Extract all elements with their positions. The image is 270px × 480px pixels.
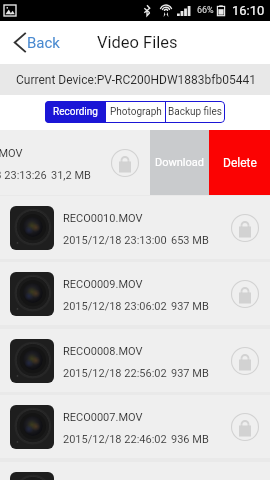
staticText: Video Files [97, 33, 178, 52]
staticText: RECO0011.MOV [0, 147, 23, 160]
staticText: RECO0008.MOV [63, 345, 143, 358]
button[interactable]: Lock file [110, 148, 140, 178]
staticText: 937 MB [171, 367, 209, 380]
staticText: Delete [223, 156, 257, 170]
staticText: RECO0010.MOV [63, 212, 143, 225]
staticText: 2015/12/18 22:46:02 [63, 433, 167, 446]
staticText: Current Device:PV-RC200HDW1883bfb05441 [16, 73, 256, 87]
button[interactable]: RECO0008.MOV [0, 329, 270, 392]
staticText: Photograph [110, 106, 162, 118]
staticText: 2015/12/18 23:13:26 [0, 169, 47, 182]
staticText: Recording [53, 106, 98, 118]
other: Bluetooth on [144, 5, 150, 16]
staticText: 2015/12/18 23:06:02 [63, 300, 167, 313]
button[interactable]: Recording [45, 101, 105, 123]
staticText: 31,2 MB [51, 169, 91, 182]
staticText: RECO0009.MOV [63, 278, 143, 291]
staticText: Download [155, 156, 204, 169]
staticText: RECO0007.MOV [63, 411, 143, 424]
button[interactable]: Backup files [166, 101, 225, 123]
button[interactable]: Photograph [106, 101, 165, 123]
button[interactable]: RECO0010.MOV [0, 196, 270, 259]
staticText: 936 MB [171, 433, 209, 446]
button[interactable]: Lock file [230, 213, 260, 243]
staticText: 66% [197, 5, 214, 16]
button[interactable]: RECO0009.MOV [0, 262, 270, 325]
button[interactable]: Back [10, 27, 64, 58]
staticText: 653 MB [171, 234, 209, 247]
staticText: 937 MB [171, 300, 209, 313]
button[interactable]: Delete [209, 130, 270, 195]
button[interactable]: RECO0006.MOV [0, 462, 270, 480]
button[interactable]: RECO0011.MOV [0, 130, 270, 195]
button[interactable]: RECO0007.MOV [0, 395, 270, 458]
button[interactable]: Lock file [230, 346, 260, 376]
staticText: Back [27, 34, 60, 52]
button[interactable]: Download [150, 130, 209, 195]
staticText: 16:10 [232, 3, 265, 18]
staticText: 2015/12/18 22:56:02 [63, 367, 167, 380]
other: Wi-Fi connected [160, 4, 172, 17]
staticText: Backup files [168, 106, 223, 118]
button[interactable]: Lock file [230, 412, 260, 442]
staticText: 2015/12/18 23:13:00 [63, 234, 167, 247]
button[interactable]: Lock file [230, 279, 260, 309]
